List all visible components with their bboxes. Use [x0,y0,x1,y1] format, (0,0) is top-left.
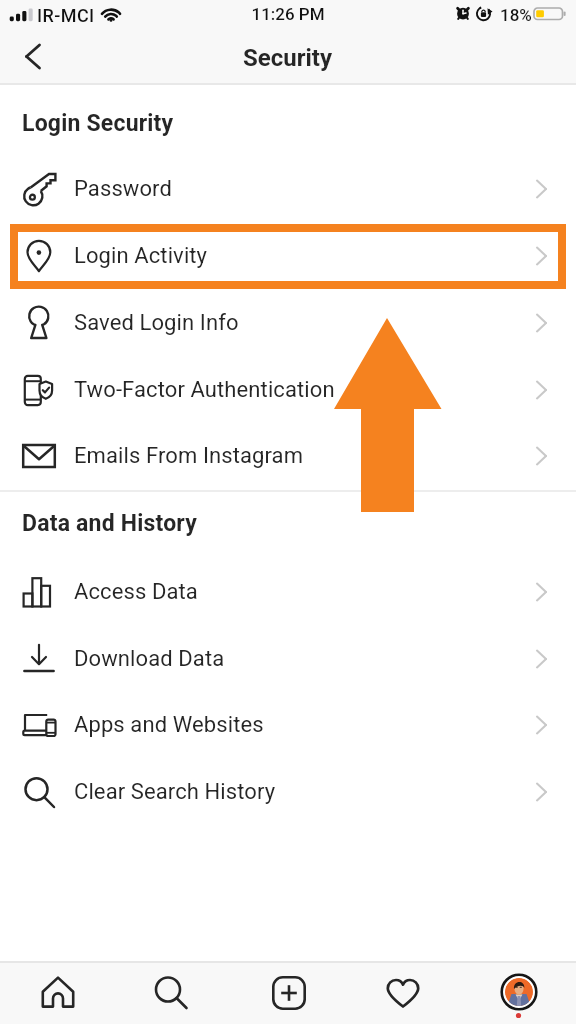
button[interactable]: Profile [461,961,576,1024]
button[interactable]: Download Data [0,625,576,692]
staticText: 11:26 PM [0,4,576,24]
button[interactable]: Emails From Instagram [0,422,576,489]
staticText: Emails From Instagram [74,443,304,469]
staticText: IR-MCI [37,5,95,26]
button[interactable]: Clear Search History [0,758,576,825]
button[interactable]: Back [0,30,62,85]
staticText: Data and History [22,510,197,537]
staticText: Download Data [74,646,225,672]
button[interactable]: Home [0,961,116,1024]
button[interactable]: Activity [346,961,461,1024]
button[interactable]: Search [116,961,231,1024]
staticText: Two-Factor Authentication [74,377,335,403]
staticText: Saved Login Info [74,310,239,336]
staticText: Access Data [74,579,198,605]
button[interactable]: Login Activity [0,222,576,289]
staticText: 18% [500,5,532,25]
staticText: Apps and Websites [74,712,264,738]
staticText: Security [243,44,333,72]
staticText: Login Activity [74,243,208,269]
staticText: Clear Search History [74,779,276,805]
button[interactable]: Two-Factor Authentication [0,356,576,423]
button[interactable]: Access Data [0,558,576,625]
staticText: Password [74,176,172,202]
button[interactable]: Saved Login Info [0,289,576,356]
button[interactable]: New post [231,961,346,1024]
button[interactable]: Apps and Websites [0,691,576,758]
staticText: Login Security [22,110,174,137]
button[interactable]: Password [0,155,576,222]
